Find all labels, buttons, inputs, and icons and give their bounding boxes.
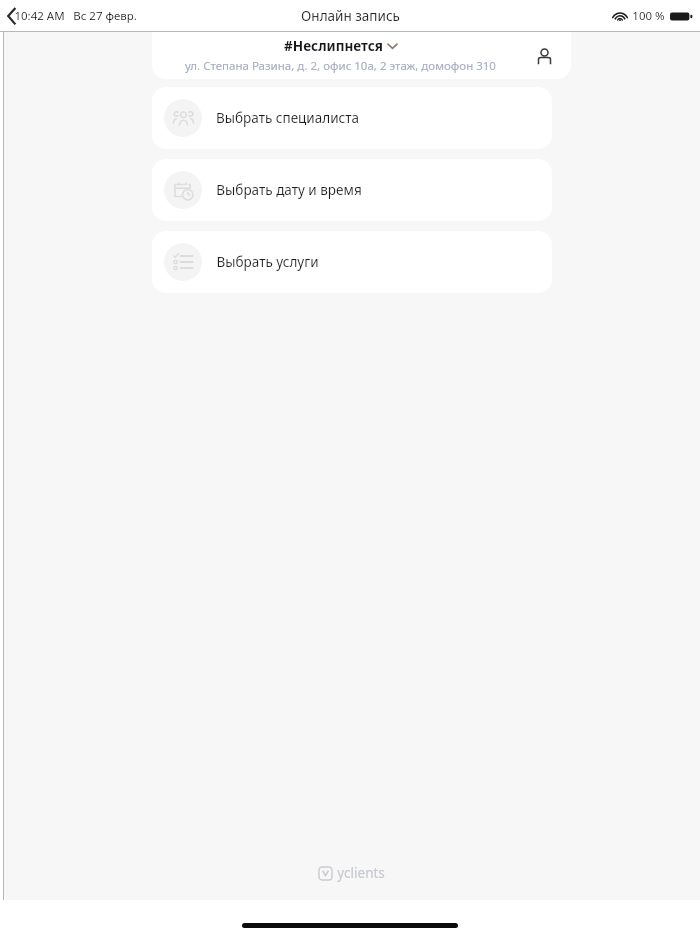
staticText: Выбрать дату и время (216, 181, 362, 199)
staticText: Онлайн запись (301, 7, 400, 25)
button[interactable]: Выбрать специалиста (152, 87, 552, 149)
button[interactable]: Profile (529, 41, 559, 71)
staticText: Выбрать услуги (216, 253, 319, 271)
staticText: Выбрать специалиста (216, 109, 359, 127)
staticText: #Неслипнется (284, 37, 383, 55)
button[interactable]: Выбрать дату и время (152, 159, 552, 221)
staticText: Вс 27 февр. (73, 8, 137, 24)
staticText: 10:42 AM (14, 8, 65, 24)
staticText: yclients (337, 864, 385, 882)
staticText: ул. Степана Разина, д. 2, офис 10а, 2 эт… (185, 58, 496, 74)
button[interactable]: yclients (4, 864, 700, 882)
button[interactable]: #Неслипнется (152, 32, 571, 79)
staticText: 100 % (632, 8, 665, 24)
button[interactable]: Back (2, 5, 24, 27)
button[interactable]: Выбрать услуги (152, 231, 552, 293)
